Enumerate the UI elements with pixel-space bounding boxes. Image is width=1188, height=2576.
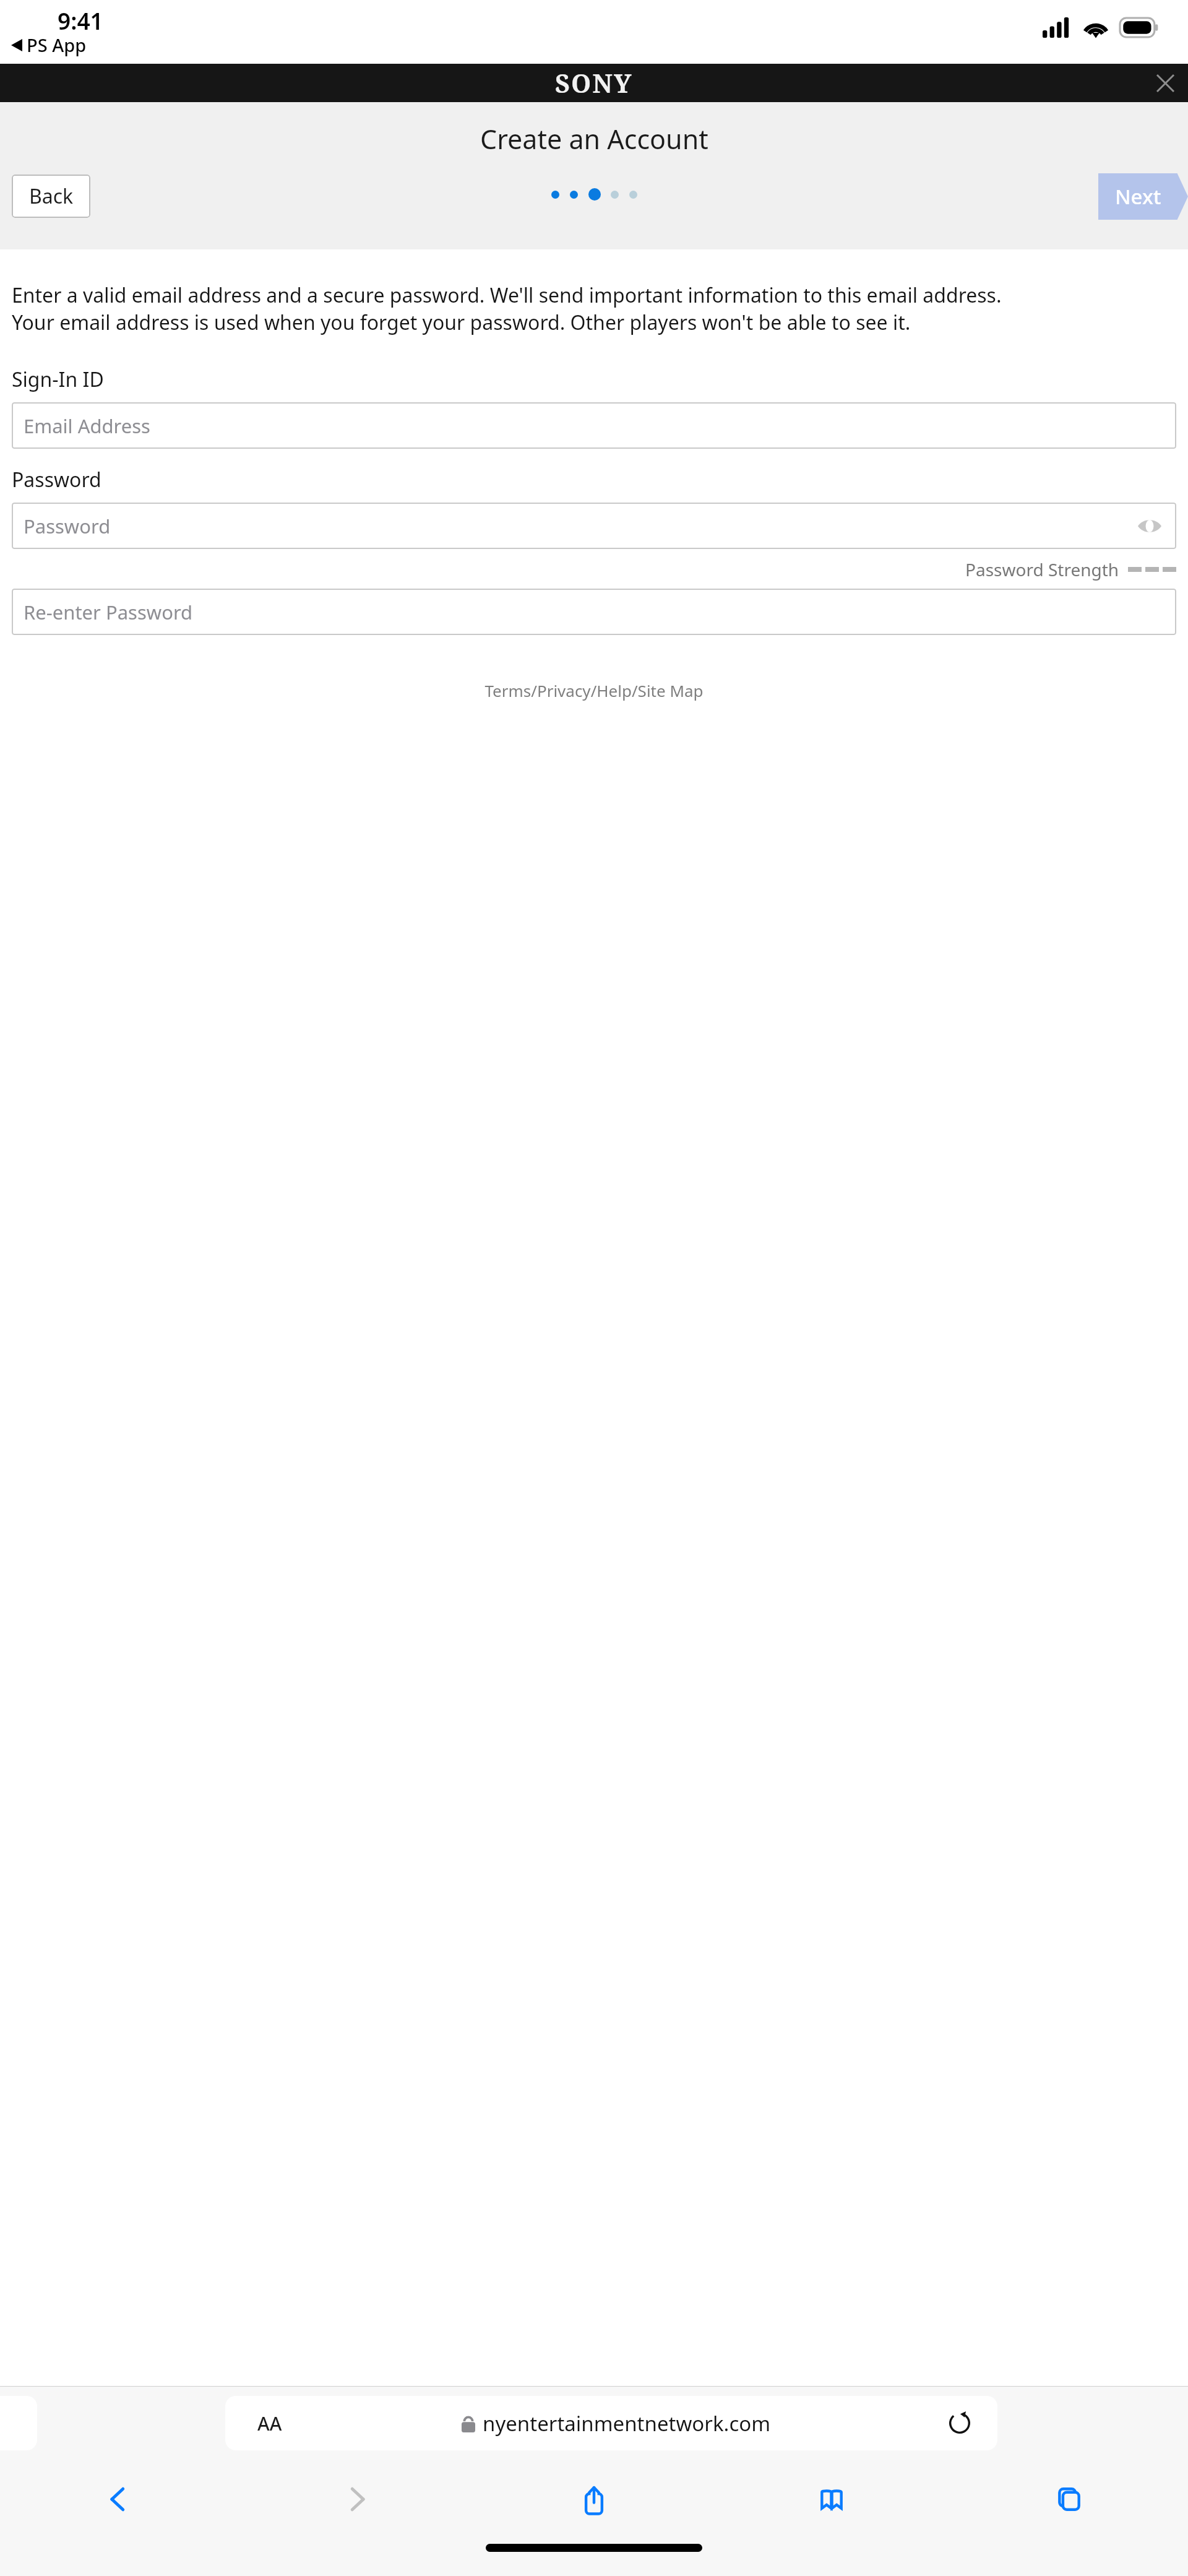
staticText: Create an Account	[480, 121, 708, 157]
staticText: Your email address is used when you forg…	[12, 309, 911, 336]
staticText: SONY	[555, 66, 633, 100]
button[interactable]: Close	[1150, 67, 1181, 98]
staticText: nyentertainmentnetwork.com	[483, 2410, 771, 2437]
staticText: 9:41	[58, 5, 103, 36]
staticText: PS App	[27, 33, 87, 57]
button[interactable]: Share	[475, 2460, 713, 2539]
button[interactable]: Back	[0, 2460, 238, 2539]
button[interactable]: Next	[1098, 173, 1188, 220]
staticText: Sign-In ID	[12, 366, 104, 393]
staticText: Re-enter Password	[24, 599, 193, 625]
button[interactable]: Show password	[1135, 512, 1164, 540]
button[interactable]: Reload	[943, 2406, 976, 2440]
staticText: Password	[24, 513, 111, 539]
button[interactable]: Tabs	[950, 2460, 1188, 2539]
button[interactable]: Forward	[238, 2460, 475, 2539]
button[interactable]: Terms/Privacy/Help/Site Map	[12, 680, 1176, 701]
staticText: Next	[1115, 183, 1161, 210]
button[interactable]: Email Address	[12, 402, 1176, 449]
button[interactable]: AA	[225, 2396, 997, 2450]
button[interactable]: Password	[12, 503, 1176, 549]
staticText: Password Strength	[965, 558, 1119, 581]
staticText: AA	[257, 2411, 282, 2436]
button[interactable]: Re-enter Password	[12, 589, 1176, 635]
button[interactable]: Back	[12, 175, 90, 218]
staticText: Enter a valid email address and a secure…	[12, 282, 1002, 309]
staticText: Email Address	[24, 413, 150, 439]
staticText: Back	[29, 183, 74, 210]
button[interactable]: Bookmarks	[713, 2460, 950, 2539]
staticText: Password	[12, 466, 101, 493]
